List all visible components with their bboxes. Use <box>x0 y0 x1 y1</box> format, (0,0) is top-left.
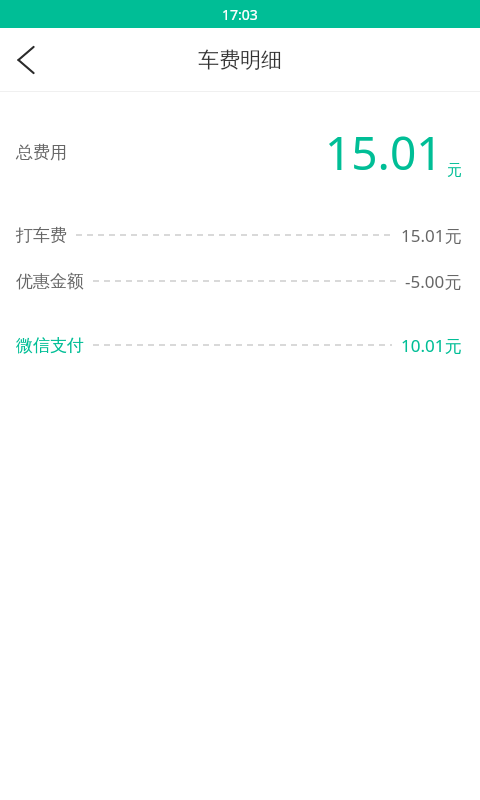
staticText: -5.00元 <box>405 270 462 293</box>
button[interactable]: 微信支付 <box>0 333 480 357</box>
button[interactable]: Back <box>0 34 52 86</box>
button[interactable]: 打车费 <box>0 223 480 247</box>
staticText: 17:03 <box>222 5 258 24</box>
staticText: 总费用 <box>16 142 67 163</box>
staticText: 打车费 <box>16 225 67 246</box>
button[interactable]: 优惠金额 <box>0 269 480 293</box>
staticText: 15.01 <box>325 121 443 184</box>
staticText: 优惠金额 <box>16 271 84 292</box>
staticText: 元 <box>447 161 462 180</box>
staticText: 微信支付 <box>16 335 84 356</box>
staticText: 10.01元 <box>401 334 462 357</box>
staticText: 15.01元 <box>401 224 462 247</box>
staticText: 车费明细 <box>198 47 282 73</box>
